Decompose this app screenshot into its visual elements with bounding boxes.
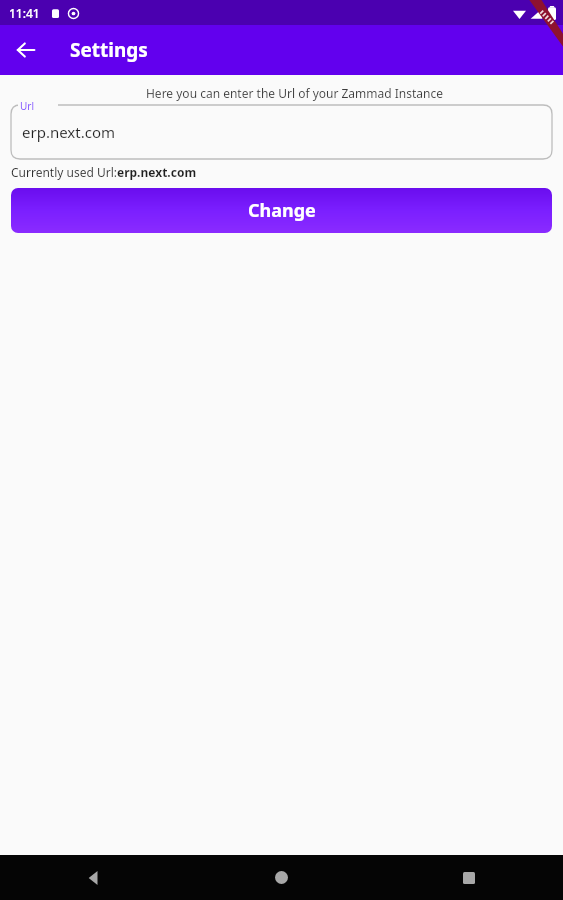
button[interactable]: Change [11, 188, 552, 233]
staticText: 11:41 [9, 5, 40, 21]
button[interactable]: Back [6, 30, 46, 70]
button[interactable]: Recent apps [375, 855, 563, 900]
button[interactable]: Home [187, 855, 375, 900]
staticText: Settings [70, 37, 148, 63]
staticText: Currently used Url:erp.next.com [11, 164, 197, 180]
staticText: Here you can enter the Url of your Zamma… [40, 85, 549, 101]
staticText: Url [20, 99, 35, 113]
button[interactable]: Back [0, 855, 187, 900]
staticText: erp.next.com [22, 122, 116, 142]
staticText: Change [248, 198, 316, 223]
button[interactable]: erp.next.com [11, 105, 552, 159]
